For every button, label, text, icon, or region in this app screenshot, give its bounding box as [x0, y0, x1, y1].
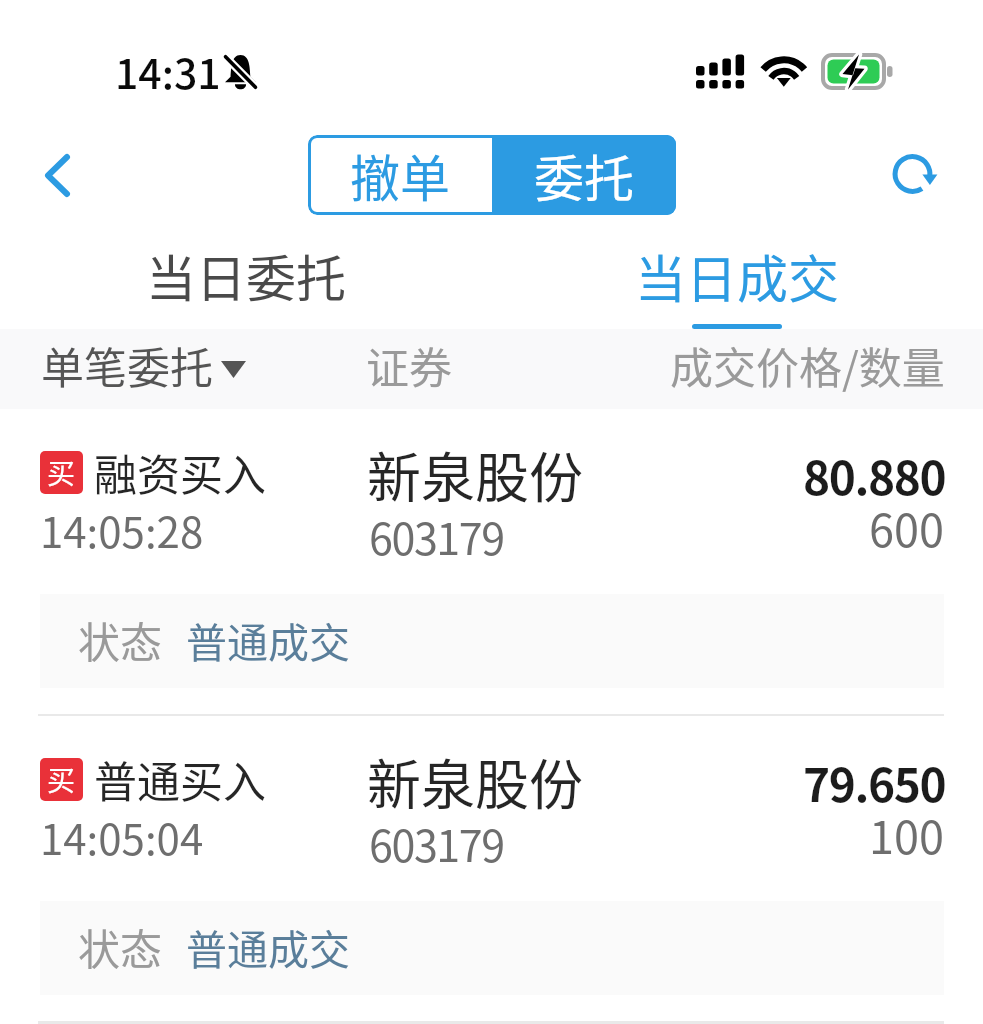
button[interactable]: 买: [0, 716, 983, 1023]
staticText: 普通买入: [94, 748, 266, 810]
staticText: 当日委托: [146, 239, 346, 311]
staticText: 603179: [369, 812, 504, 874]
staticText: 100: [869, 802, 944, 867]
staticText: 状态: [78, 916, 163, 977]
staticText: 当日成交: [635, 239, 840, 313]
staticText: 79.650: [803, 749, 946, 816]
staticText: 14:05:28: [40, 499, 204, 560]
staticText: 证券: [366, 334, 452, 396]
staticText: 融资买入: [94, 441, 266, 503]
staticText: 买: [47, 452, 76, 493]
staticText: 14:05:04: [40, 806, 204, 867]
staticText: 80.880: [803, 442, 946, 509]
button[interactable]: 委托: [492, 135, 676, 215]
staticText: 新泉股份: [367, 742, 583, 820]
staticText: 成交价格/数量: [670, 334, 945, 396]
staticText: 状态: [78, 609, 163, 670]
staticText: 603179: [369, 505, 504, 567]
staticText: 委托: [534, 139, 634, 211]
staticText: 14:31: [115, 41, 221, 100]
staticText: 撤单: [350, 139, 450, 211]
button[interactable]: 当日成交: [491, 230, 983, 329]
staticText: 单笔委托: [41, 334, 213, 396]
staticText: 普通成交: [186, 917, 350, 976]
staticText: 600: [869, 495, 944, 560]
staticText: 买: [47, 759, 76, 800]
button[interactable]: 当日委托: [0, 230, 491, 329]
button[interactable]: Refresh: [880, 139, 950, 209]
button[interactable]: 撤单: [308, 135, 492, 215]
staticText: 新泉股份: [367, 435, 583, 513]
button[interactable]: Back: [22, 140, 92, 210]
button[interactable]: 单笔委托: [41, 334, 246, 396]
staticText: 普通成交: [186, 610, 350, 669]
button[interactable]: 买: [0, 409, 983, 716]
